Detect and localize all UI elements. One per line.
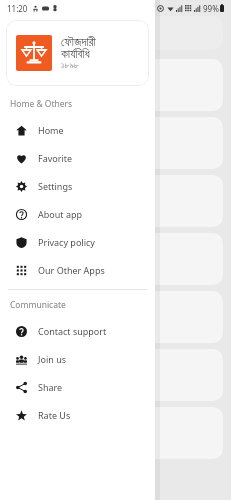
staticText: Settings [38, 180, 73, 192]
button[interactable] [8, 175, 223, 227]
staticText: About app [38, 208, 83, 220]
button[interactable]: Contact support [0, 317, 155, 345]
button[interactable]: Home [0, 116, 155, 144]
button[interactable]: …িত সুসংহত… [8, 59, 223, 111]
button[interactable]: Settings [0, 172, 155, 200]
button[interactable]: …নর ও অন্যা… [8, 291, 223, 343]
button[interactable]: About app [0, 200, 155, 228]
staticText: Privacy policy [38, 236, 95, 248]
button[interactable]: …াপ [8, 349, 223, 401]
button[interactable]: Our Other Apps [0, 256, 155, 284]
button[interactable]: Favorite [0, 144, 155, 172]
button[interactable]: Privacy policy [0, 228, 155, 256]
button[interactable] [8, 407, 223, 459]
staticText: Our Other Apps [38, 264, 105, 276]
staticText: Home [38, 124, 64, 136]
staticText: কার্যবিধি [61, 48, 90, 60]
staticText: Communicate [10, 299, 66, 311]
button[interactable]: Share [0, 373, 155, 401]
button[interactable]: Join us [0, 345, 155, 373]
staticText: 11:20 [7, 3, 28, 14]
staticText: ১৮৯৮ [61, 61, 80, 70]
staticText: Favorite [38, 152, 73, 164]
staticText: Home & Others [10, 98, 73, 110]
staticText: …িত সুসংহত… [18, 79, 69, 91]
staticText: ফৌজদারী [61, 36, 96, 48]
button[interactable] [8, 233, 223, 285]
staticText: Contact support [38, 325, 107, 337]
staticText: Rate Us [38, 409, 71, 421]
staticText: 99% [203, 3, 219, 14]
button[interactable] [8, 117, 223, 169]
staticText: Share [38, 381, 63, 393]
button[interactable]: Rate Us [0, 401, 155, 429]
button[interactable]: ফৌজদারী [6, 20, 149, 86]
staticText: Join us [38, 353, 66, 365]
